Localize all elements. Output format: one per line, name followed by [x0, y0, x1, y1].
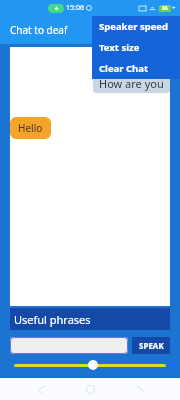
staticText: Text size: [99, 41, 140, 54]
staticText: How are you: [99, 76, 164, 91]
staticText: 86: [162, 5, 168, 12]
button[interactable]: Back: [32, 380, 50, 398]
staticText: SPEAK: [139, 340, 164, 351]
button[interactable]: Speech rate slider: [14, 359, 166, 371]
button[interactable]: Speaker speed: [92, 16, 180, 37]
button[interactable]: Clear Chat: [92, 58, 180, 79]
button[interactable]: Text size: [92, 37, 180, 58]
staticText: Chat to deaf: [10, 23, 68, 37]
staticText: Useful phrases: [14, 312, 91, 327]
button[interactable]: SPEAK: [132, 337, 170, 354]
staticText: Hello: [18, 121, 43, 135]
staticText: 15:06: [66, 3, 84, 13]
button[interactable]: Chat to deaf: [0, 19, 74, 41]
staticText: Speaker speed: [99, 20, 168, 33]
button[interactable]: Useful phrases: [10, 308, 170, 330]
button[interactable]: [10, 337, 128, 354]
button[interactable]: Home: [81, 380, 99, 398]
button[interactable]: Hello: [10, 117, 51, 139]
staticText: +: [172, 4, 176, 12]
staticText: Clear Chat: [99, 62, 149, 75]
button[interactable]: How are you: [93, 74, 170, 93]
button[interactable]: Recents: [131, 380, 149, 398]
